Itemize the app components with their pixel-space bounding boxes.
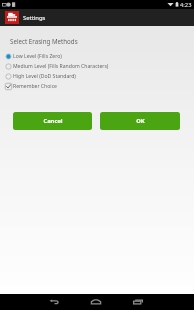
staticText: Medium Level (Fills Random Characters) bbox=[13, 63, 109, 70]
staticText: OK bbox=[136, 117, 145, 125]
button[interactable]: Home bbox=[75, 294, 117, 310]
staticText: Low Level (Fills Zero) bbox=[13, 53, 62, 60]
staticText: Settings bbox=[23, 14, 46, 22]
button[interactable]: Medium Level (Fills Random Characters) bbox=[0, 61, 194, 71]
staticText: Cancel bbox=[43, 117, 63, 125]
button[interactable]: Back bbox=[33, 294, 75, 310]
button[interactable]: Cancel bbox=[13, 112, 92, 130]
button[interactable]: High Level (DoD Standard) bbox=[0, 71, 194, 81]
staticText: Remember Choice bbox=[13, 83, 57, 90]
button[interactable]: Remember Choice bbox=[0, 81, 194, 91]
staticText: 4:23 bbox=[180, 1, 192, 9]
staticText: High Level (DoD Standard) bbox=[13, 73, 76, 80]
button[interactable]: Recent apps bbox=[117, 294, 159, 310]
button[interactable]: OK bbox=[100, 112, 180, 130]
staticText: Select Erasing Methods bbox=[10, 37, 78, 45]
button[interactable]: Low Level (Fills Zero) bbox=[0, 51, 194, 61]
